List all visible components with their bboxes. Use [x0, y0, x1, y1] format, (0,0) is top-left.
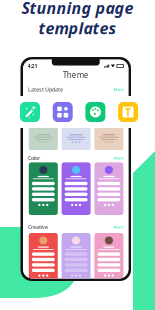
button[interactable]: Tool [53, 102, 73, 122]
button[interactable]: Template [62, 233, 91, 286]
staticText: templates [38, 17, 116, 39]
button[interactable]: Template [29, 127, 58, 150]
button[interactable]: Tool [118, 102, 138, 122]
staticText: More [113, 155, 123, 161]
button[interactable]: Template [94, 233, 123, 286]
button[interactable]: More [113, 224, 123, 230]
staticText: Color [28, 154, 40, 162]
staticText: Latest Update [28, 86, 63, 93]
button[interactable]: Template [94, 127, 123, 150]
button[interactable]: Template [94, 162, 123, 215]
staticText: More [113, 224, 123, 230]
staticText: Theme [63, 69, 89, 80]
staticText: More [113, 87, 123, 92]
staticText: 4:21 [28, 62, 38, 70]
button[interactable]: Template [29, 233, 58, 286]
staticText: Stunning page [21, 0, 133, 18]
button[interactable]: Tool [85, 102, 105, 122]
button[interactable]: More [113, 87, 123, 92]
staticText: Creative [28, 223, 48, 231]
staticText: T [125, 105, 131, 119]
button[interactable]: More [113, 155, 123, 161]
button[interactable]: Template [62, 127, 91, 150]
button[interactable]: Template [29, 162, 58, 215]
button[interactable]: Template [62, 162, 91, 215]
button[interactable]: Tool [20, 102, 40, 122]
